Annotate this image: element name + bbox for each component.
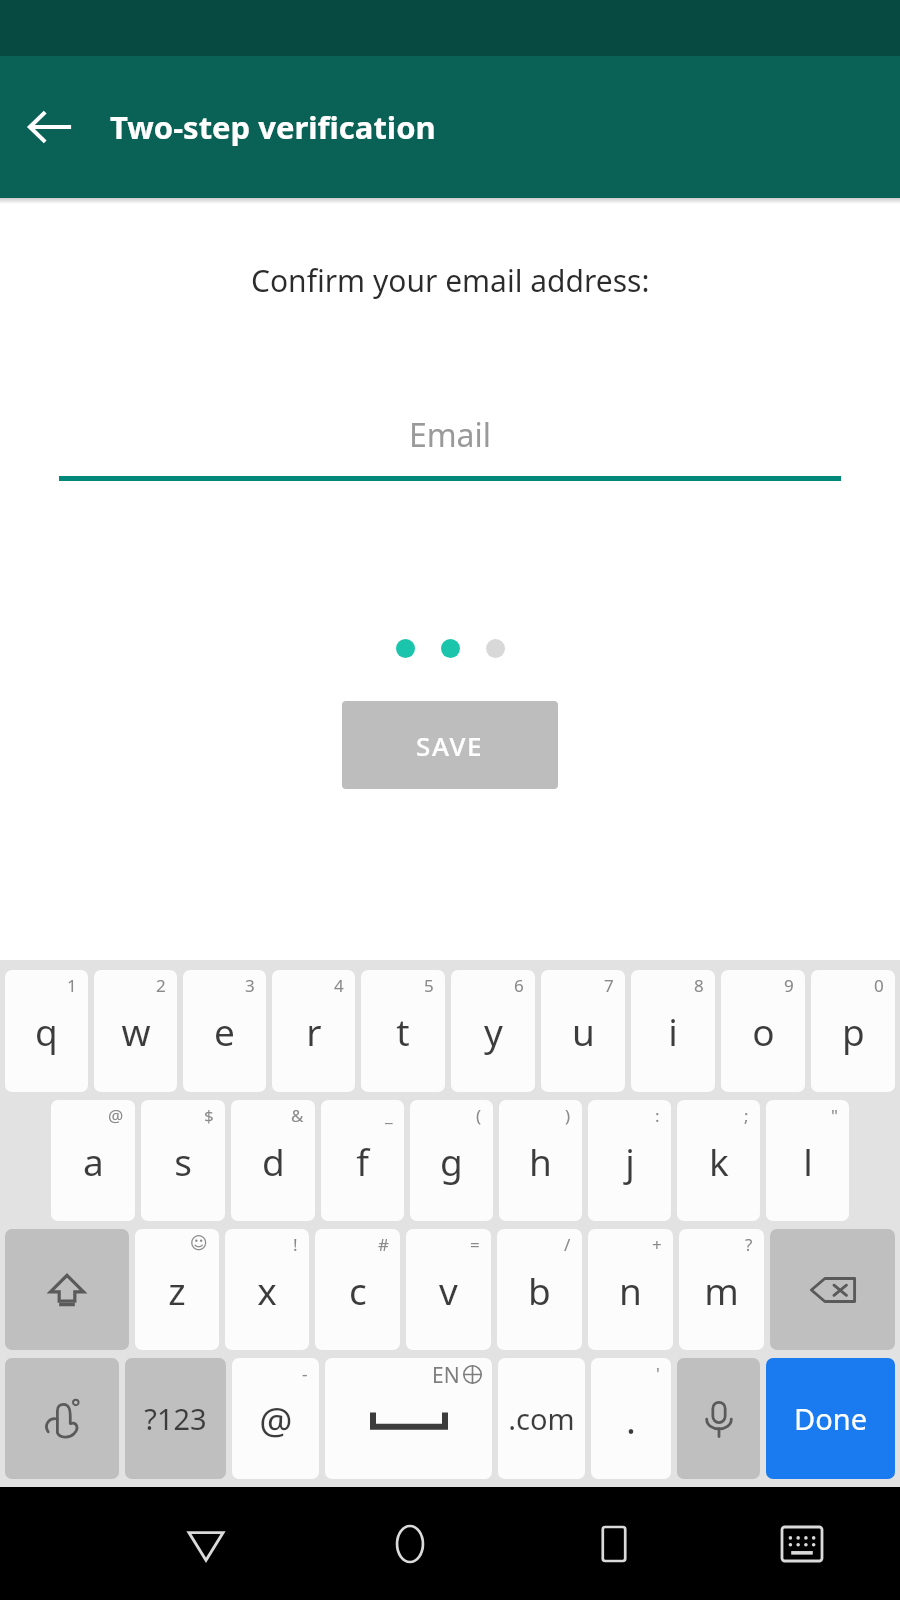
button[interactable]: Space — [325, 1358, 492, 1479]
staticText: v — [439, 1265, 458, 1315]
staticText: @ — [108, 1104, 124, 1127]
button[interactable]: ☺ — [135, 1229, 219, 1350]
staticText: SAVE — [416, 728, 484, 763]
button[interactable]: $ — [141, 1100, 225, 1221]
staticText: # — [378, 1233, 389, 1256]
button[interactable]: " — [766, 1100, 849, 1221]
button[interactable]: Shift — [5, 1229, 129, 1350]
staticText: 2 — [156, 974, 166, 997]
staticText: c — [349, 1265, 367, 1315]
button[interactable]: 8 — [631, 970, 715, 1092]
button[interactable]: .com — [498, 1358, 585, 1479]
button[interactable]: Done — [766, 1358, 895, 1479]
staticText: 0 — [874, 974, 884, 997]
staticText: & — [291, 1104, 304, 1127]
staticText: 1 — [67, 974, 77, 997]
button[interactable]: Voice input — [677, 1358, 760, 1479]
staticText: Done — [794, 1399, 867, 1438]
button[interactable]: Back — [22, 99, 78, 155]
staticText: : — [655, 1104, 660, 1127]
staticText: q — [35, 1006, 58, 1056]
button[interactable]: ! — [225, 1229, 309, 1350]
button[interactable]: @ — [51, 1100, 135, 1221]
button[interactable]: 3 — [183, 970, 266, 1092]
staticText: k — [709, 1136, 729, 1186]
staticText: / — [564, 1233, 571, 1256]
staticText: .com — [508, 1399, 575, 1438]
button[interactable]: / — [497, 1229, 582, 1350]
staticText: s — [174, 1136, 192, 1186]
button[interactable]: ( — [410, 1100, 493, 1221]
button[interactable]: : — [588, 1100, 671, 1221]
button[interactable]: ? — [679, 1229, 764, 1350]
staticText: 5 — [424, 974, 434, 997]
staticText: - — [302, 1362, 308, 1385]
staticText: EN — [432, 1361, 460, 1390]
staticText: y — [484, 1006, 503, 1056]
staticText: j — [625, 1136, 635, 1186]
staticText: Email — [59, 413, 841, 457]
staticText: ( — [476, 1104, 482, 1127]
staticText: 7 — [604, 974, 614, 997]
staticText: p — [842, 1006, 865, 1056]
button[interactable]: 6 — [451, 970, 535, 1092]
button[interactable]: = — [406, 1229, 491, 1350]
staticText: n — [619, 1265, 642, 1315]
button[interactable]: Email — [59, 413, 841, 457]
staticText: ?123 — [144, 1399, 207, 1438]
staticText: a — [83, 1136, 104, 1186]
staticText: e — [214, 1006, 235, 1056]
staticText: ☺ — [190, 1233, 208, 1253]
staticText: u — [572, 1006, 595, 1056]
staticText: g — [440, 1136, 463, 1186]
button[interactable]: 4 — [272, 970, 355, 1092]
button[interactable]: ?123 — [125, 1358, 226, 1479]
staticText: ? — [745, 1233, 753, 1256]
button[interactable]: 0 — [811, 970, 895, 1092]
button[interactable]: _ — [321, 1100, 404, 1221]
button[interactable]: ' — [591, 1358, 671, 1479]
staticText: 4 — [334, 974, 344, 997]
button[interactable]: 5 — [361, 970, 445, 1092]
button[interactable]: # — [315, 1229, 400, 1350]
staticText: 9 — [784, 974, 794, 997]
staticText: m — [704, 1265, 739, 1315]
staticText: 3 — [245, 974, 255, 997]
staticText: = — [470, 1233, 480, 1256]
button[interactable]: 1 — [5, 970, 88, 1092]
staticText: $ — [204, 1104, 214, 1127]
staticText: 8 — [694, 974, 704, 997]
staticText: ' — [656, 1362, 660, 1385]
staticText: Two-step verification — [110, 106, 436, 148]
button[interactable]: Handwriting — [5, 1358, 119, 1479]
staticText: b — [528, 1265, 551, 1315]
button[interactable]: ; — [677, 1100, 760, 1221]
button[interactable]: Home — [367, 1501, 453, 1587]
staticText: ; — [744, 1104, 749, 1127]
button[interactable]: 2 — [94, 970, 177, 1092]
button[interactable]: Back — [163, 1501, 249, 1587]
button[interactable]: 9 — [721, 970, 805, 1092]
staticText: r — [306, 1006, 322, 1056]
button[interactable]: Switch keyboard — [759, 1501, 845, 1587]
staticText: 6 — [514, 974, 524, 997]
staticText: + — [652, 1233, 662, 1256]
staticText: ! — [293, 1233, 298, 1256]
button[interactable]: & — [231, 1100, 315, 1221]
staticText: o — [752, 1006, 775, 1056]
button[interactable]: 7 — [541, 970, 625, 1092]
staticText: t — [396, 1006, 410, 1056]
button[interactable]: Recents — [571, 1501, 657, 1587]
staticText: l — [803, 1136, 813, 1186]
button[interactable]: ) — [499, 1100, 582, 1221]
staticText: f — [356, 1136, 369, 1186]
staticText: x — [257, 1265, 277, 1315]
button[interactable]: SAVE — [342, 701, 558, 789]
staticText: d — [262, 1136, 285, 1186]
staticText: _ — [385, 1104, 393, 1127]
button[interactable]: Backspace — [770, 1229, 895, 1350]
button[interactable]: + — [588, 1229, 673, 1350]
staticText: " — [831, 1104, 838, 1127]
button[interactable]: - — [232, 1358, 319, 1479]
staticText: @ — [259, 1394, 293, 1444]
